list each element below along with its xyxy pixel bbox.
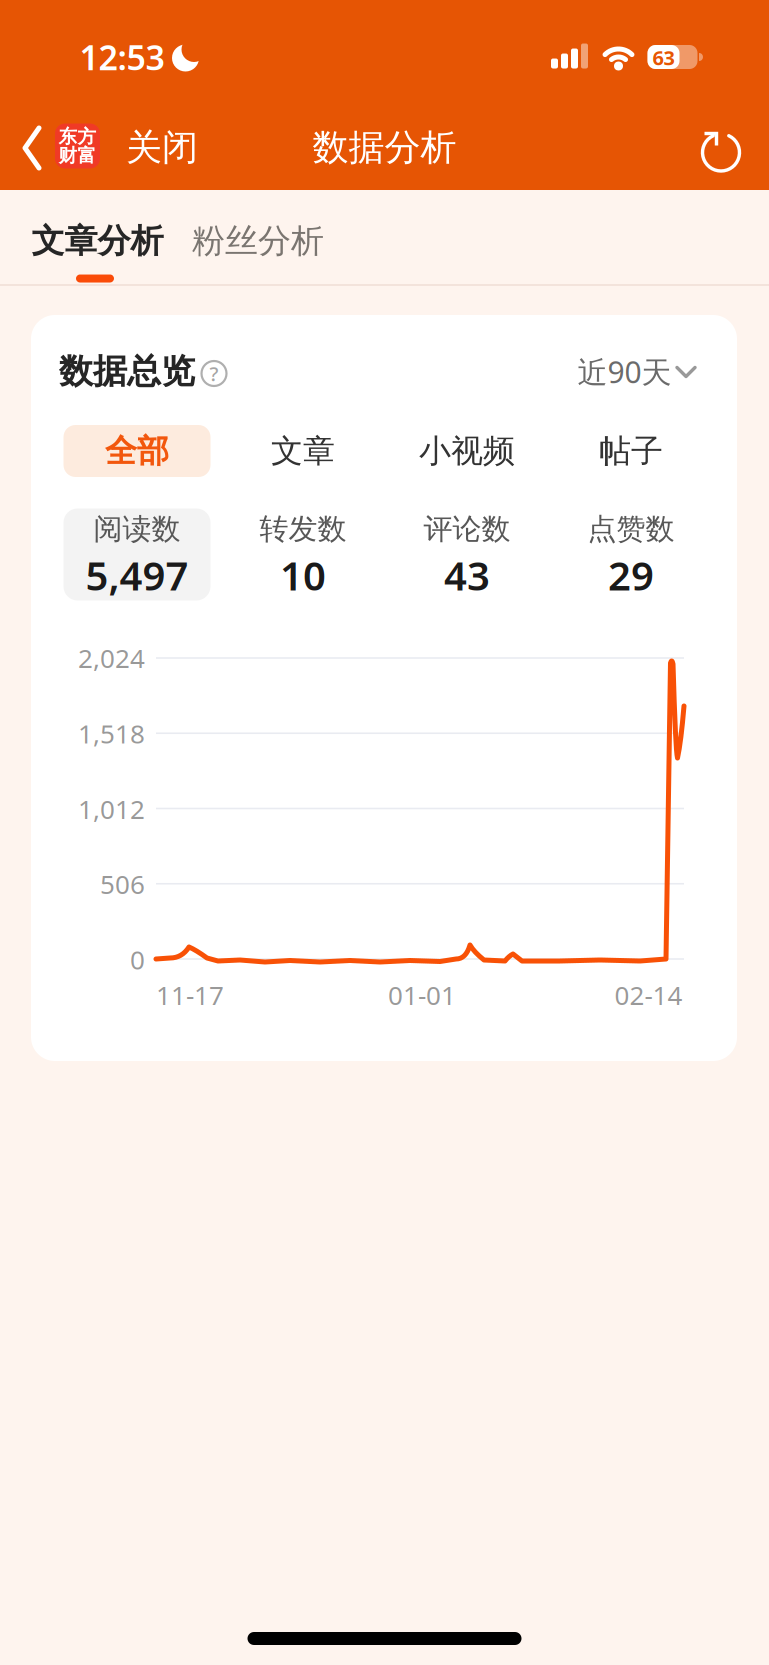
staticText: 29 — [608, 549, 654, 601]
button[interactable]: 全部 — [63, 425, 210, 477]
button[interactable]: 帮助 — [201, 361, 226, 386]
button[interactable]: 文章分析 — [31, 221, 163, 261]
staticText: ? — [209, 361, 218, 386]
staticText: 11-17 — [156, 978, 224, 1012]
staticText: 粉丝分析 — [192, 221, 324, 261]
staticText: 0 — [130, 943, 145, 976]
staticText: 01-01 — [388, 978, 456, 1012]
button[interactable]: 文章 — [271, 432, 335, 470]
staticText: 文章分析 — [31, 221, 163, 261]
staticText: 5,497 — [85, 549, 188, 601]
staticText: 2,024 — [78, 641, 145, 675]
staticText: 转发数 — [259, 512, 346, 546]
staticText: 43 — [444, 549, 490, 601]
staticText: 阅读数 — [93, 512, 180, 546]
button[interactable]: 粉丝分析 — [192, 221, 324, 261]
button[interactable]: 近90天 — [584, 351, 696, 391]
staticText: 10 — [280, 549, 326, 601]
staticText: 数据总览 — [59, 351, 195, 392]
button[interactable]: 刷新 — [698, 126, 744, 172]
staticText: 02-14 — [614, 978, 682, 1012]
staticText: 506 — [100, 867, 145, 901]
staticText: 评论数 — [423, 512, 510, 546]
staticText: 12:53 — [79, 35, 164, 79]
staticText: 数据分析 — [312, 126, 456, 169]
button[interactable]: 返回 — [21, 125, 43, 171]
staticText: 63 — [652, 45, 674, 70]
staticText: 帖子 — [599, 432, 663, 470]
staticText: 小视频 — [419, 432, 515, 470]
staticText: 全部 — [105, 432, 169, 470]
button[interactable]: 东方财富 — [55, 123, 100, 168]
staticText: 关闭 — [126, 126, 198, 169]
staticText: 1,012 — [78, 792, 145, 826]
staticText: 近90天 — [577, 352, 671, 391]
staticText: 1,518 — [78, 717, 145, 750]
button[interactable]: 帖子 — [599, 432, 663, 470]
button[interactable]: 关闭 — [126, 126, 198, 169]
staticText: 财富 — [58, 144, 96, 166]
button[interactable]: 小视频 — [419, 432, 515, 470]
staticText: 东方 — [58, 125, 96, 147]
staticText: 点赞数 — [587, 512, 674, 546]
staticText: 文章 — [271, 432, 335, 470]
